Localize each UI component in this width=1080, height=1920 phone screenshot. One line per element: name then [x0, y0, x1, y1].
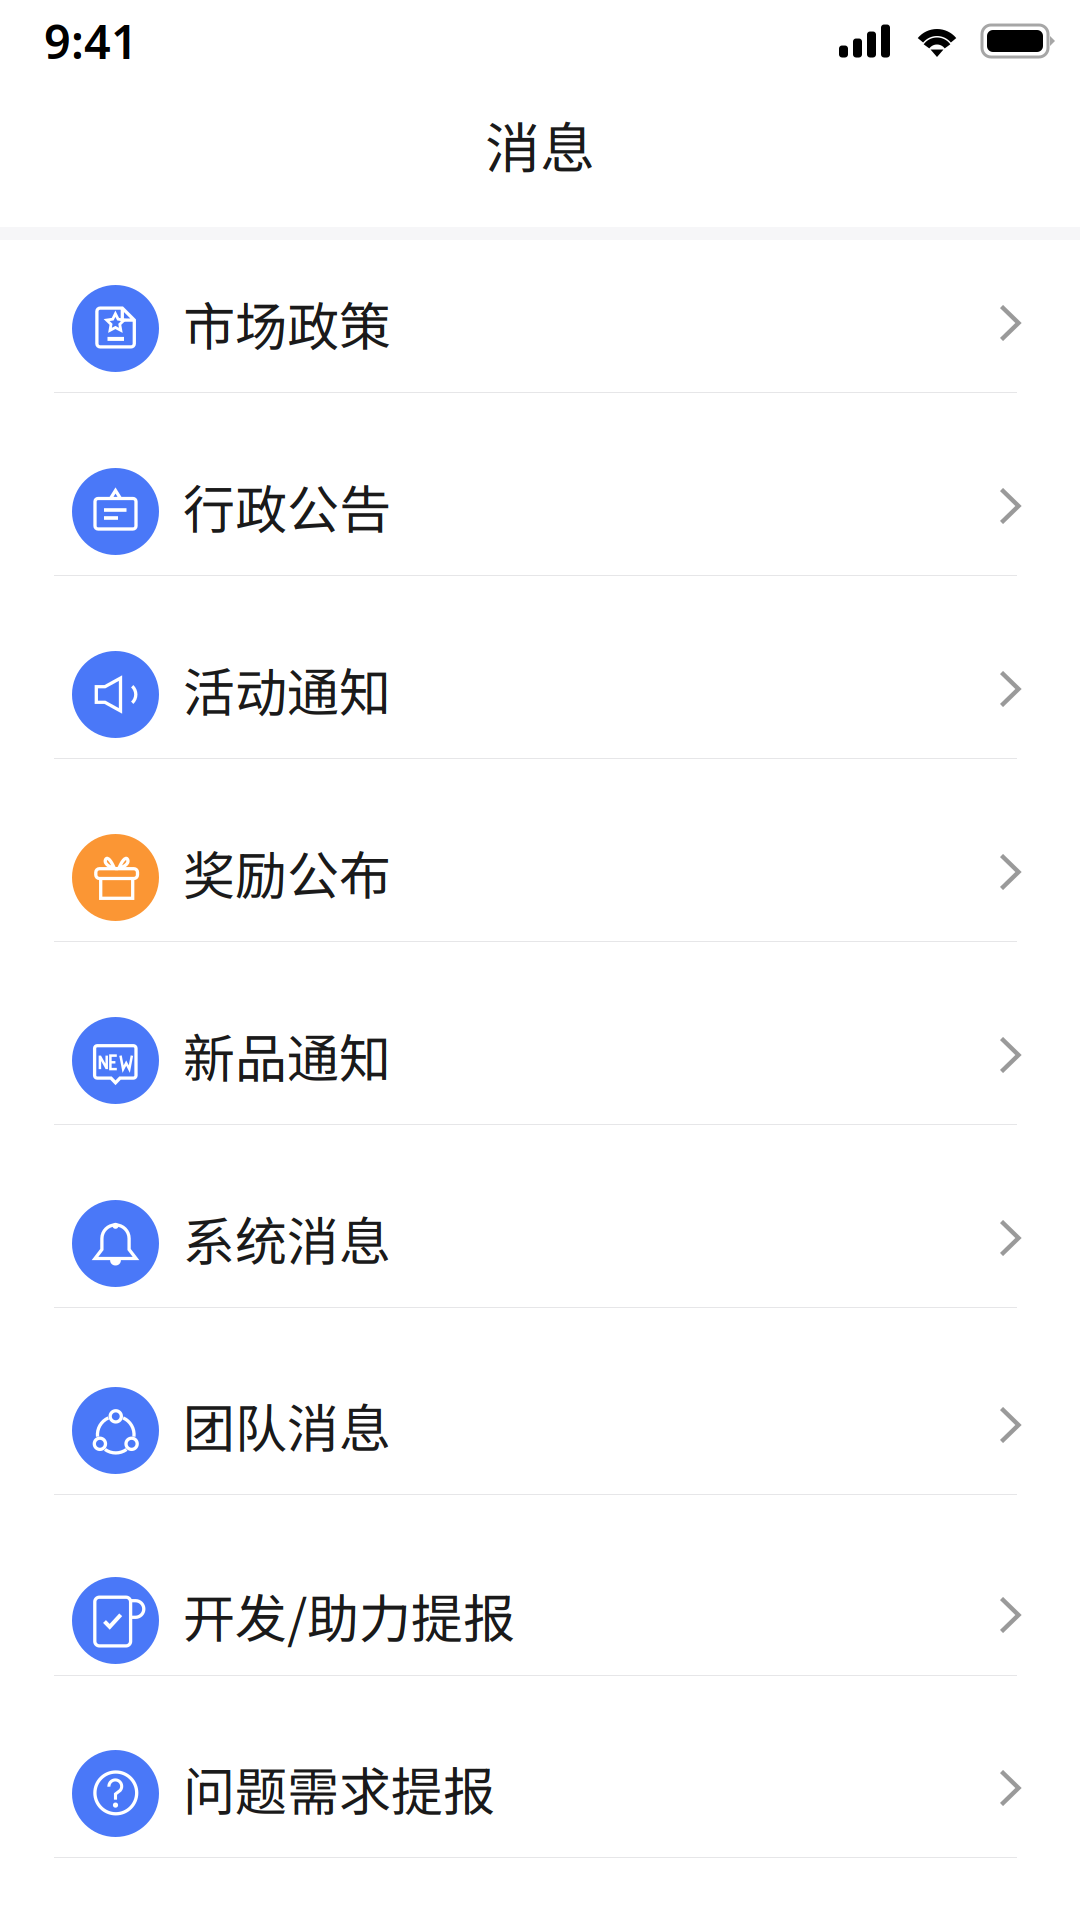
staticText: 团队消息 [183, 1387, 391, 1463]
staticText: 市场政策 [183, 285, 391, 361]
staticText: 开发/助力提报 [183, 1577, 515, 1653]
button[interactable]: 奖励公布 [0, 834, 1080, 921]
staticText: 问题需求提报 [183, 1750, 495, 1826]
button[interactable]: 市场政策 [0, 285, 1080, 372]
staticText: 行政公告 [183, 468, 391, 544]
button[interactable]: 活动通知 [0, 651, 1080, 738]
button[interactable]: 开发/助力提报 [0, 1577, 1080, 1664]
staticText: 系统消息 [183, 1200, 391, 1276]
staticText: 活动通知 [183, 651, 391, 727]
staticText: 消息 [485, 105, 595, 184]
button[interactable]: 团队消息 [0, 1387, 1080, 1474]
staticText: 奖励公布 [183, 834, 391, 910]
button[interactable]: 新品通知 [0, 1017, 1080, 1104]
button[interactable]: 系统消息 [0, 1200, 1080, 1287]
button[interactable]: 行政公告 [0, 468, 1080, 555]
staticText: 9:41 [44, 10, 138, 72]
button[interactable]: 问题需求提报 [0, 1750, 1080, 1837]
staticText: 新品通知 [183, 1017, 391, 1093]
